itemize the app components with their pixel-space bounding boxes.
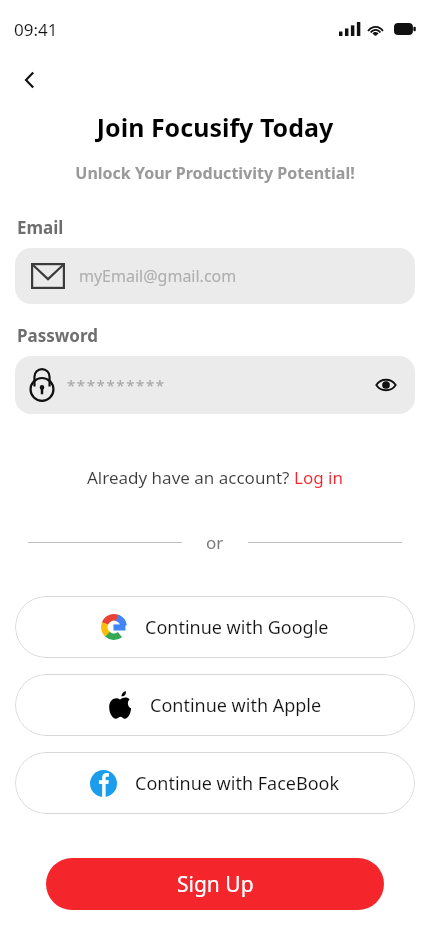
staticText: Continue with Google bbox=[145, 615, 329, 640]
staticText: Join Focusify Today bbox=[0, 110, 430, 144]
button[interactable]: ********** bbox=[15, 356, 415, 414]
staticText: or bbox=[206, 531, 224, 554]
staticText: ********** bbox=[67, 375, 166, 395]
staticText: Password bbox=[17, 324, 98, 347]
staticText: Unlock Your Productivity Potential! bbox=[0, 162, 430, 184]
button[interactable]: Sign Up bbox=[46, 858, 384, 910]
staticText: Continue with Apple bbox=[150, 693, 322, 718]
staticText: Already have an account? bbox=[87, 466, 294, 489]
staticText: 09:41 bbox=[14, 18, 58, 41]
button[interactable]: Continue with Google bbox=[15, 596, 415, 658]
staticText: Log in bbox=[294, 466, 343, 489]
staticText: Sign Up bbox=[177, 870, 254, 899]
button[interactable]: Show password bbox=[371, 370, 401, 400]
button[interactable]: Log in bbox=[294, 466, 343, 489]
button[interactable]: Back bbox=[8, 58, 52, 102]
staticText: myEmail@gmail.com bbox=[79, 265, 237, 287]
button[interactable]: Continue with FaceBook bbox=[15, 752, 415, 814]
button[interactable]: myEmail@gmail.com bbox=[15, 248, 415, 304]
button[interactable]: Continue with Apple bbox=[15, 674, 415, 736]
staticText: Continue with FaceBook bbox=[135, 771, 340, 796]
staticText: Email bbox=[17, 216, 64, 239]
